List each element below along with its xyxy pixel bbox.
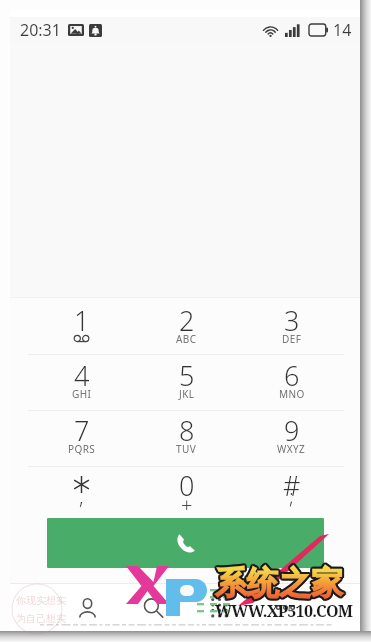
button[interactable]: 5 xyxy=(134,354,239,410)
button[interactable]: 4 xyxy=(29,354,134,410)
staticText: 14 xyxy=(333,19,352,41)
button[interactable]: , xyxy=(29,466,134,518)
staticText: 7 xyxy=(74,412,90,449)
staticText: ABC xyxy=(176,332,197,346)
staticText: 系统之家 xyxy=(215,565,343,605)
staticText: 系统之家 xyxy=(216,563,344,603)
staticText: 系统之家 xyxy=(213,562,341,602)
button[interactable]: Call xyxy=(47,518,324,568)
staticText: 系统之家 xyxy=(216,564,344,604)
button[interactable]: 7 xyxy=(29,410,134,466)
staticText: 系统之家 xyxy=(214,562,342,602)
button[interactable]: 0 xyxy=(134,466,239,518)
staticText: JKL xyxy=(179,387,195,401)
staticText: 4 xyxy=(74,357,90,394)
staticText: WWW.XP510.COM xyxy=(215,600,353,622)
staticText: 2 xyxy=(179,302,195,339)
staticText: 系统之家 xyxy=(214,564,342,604)
staticText: PQRS xyxy=(68,442,96,456)
staticText: WXYZ xyxy=(277,442,306,456)
staticText: TUV xyxy=(176,442,197,456)
button[interactable]: 3 xyxy=(239,297,344,354)
staticText: 系统之家 xyxy=(216,561,344,601)
button[interactable]: More options xyxy=(252,584,318,631)
staticText: 20:31 xyxy=(20,19,61,41)
staticText: GHI xyxy=(72,387,92,401)
button[interactable]: 6 xyxy=(239,354,344,410)
staticText: 9 xyxy=(284,412,300,449)
staticText: 1 xyxy=(74,302,90,339)
button[interactable]: 2 xyxy=(134,297,239,354)
staticText: 5 xyxy=(179,357,195,394)
staticText: 为自己想实 xyxy=(16,612,66,625)
button[interactable]: 9 xyxy=(239,410,344,466)
staticText: ; xyxy=(289,483,294,510)
staticText: MNO xyxy=(279,387,305,401)
staticText: 系统之家 xyxy=(214,563,342,603)
button[interactable]: Search xyxy=(120,584,186,631)
staticText: 8 xyxy=(179,412,195,449)
staticText: 3 xyxy=(284,302,300,339)
button[interactable]: 1 xyxy=(29,297,134,354)
staticText: 系统之家 xyxy=(214,565,342,605)
staticText: # xyxy=(283,467,301,504)
staticText: 你现实想实 xyxy=(16,594,66,607)
staticText: 系统之家 xyxy=(217,563,345,603)
button[interactable]: 8 xyxy=(134,410,239,466)
staticText: 系统之家 xyxy=(217,562,345,602)
staticText: 0 xyxy=(179,467,195,504)
staticText: + xyxy=(181,491,193,518)
staticText: , xyxy=(79,483,84,510)
staticText: 系统之家 xyxy=(216,565,344,605)
staticText: 系统之家 xyxy=(216,562,344,602)
button[interactable]: Contacts xyxy=(54,584,120,631)
staticText: 系统之家 xyxy=(215,564,343,604)
staticText: 系统之家 xyxy=(213,563,341,603)
staticText: DEF xyxy=(282,332,302,346)
staticText: 系统之家 xyxy=(215,562,343,602)
staticText: 系统之家 xyxy=(214,561,342,601)
staticText: 6 xyxy=(284,357,300,394)
staticText: 系统之家 xyxy=(217,564,345,604)
staticText: 系统之家 xyxy=(213,564,341,604)
button[interactable]: Dialpad xyxy=(186,584,252,631)
staticText: 系统之家 xyxy=(215,561,343,601)
button[interactable]: # xyxy=(239,466,344,518)
staticText: 系统之家 xyxy=(215,563,343,603)
